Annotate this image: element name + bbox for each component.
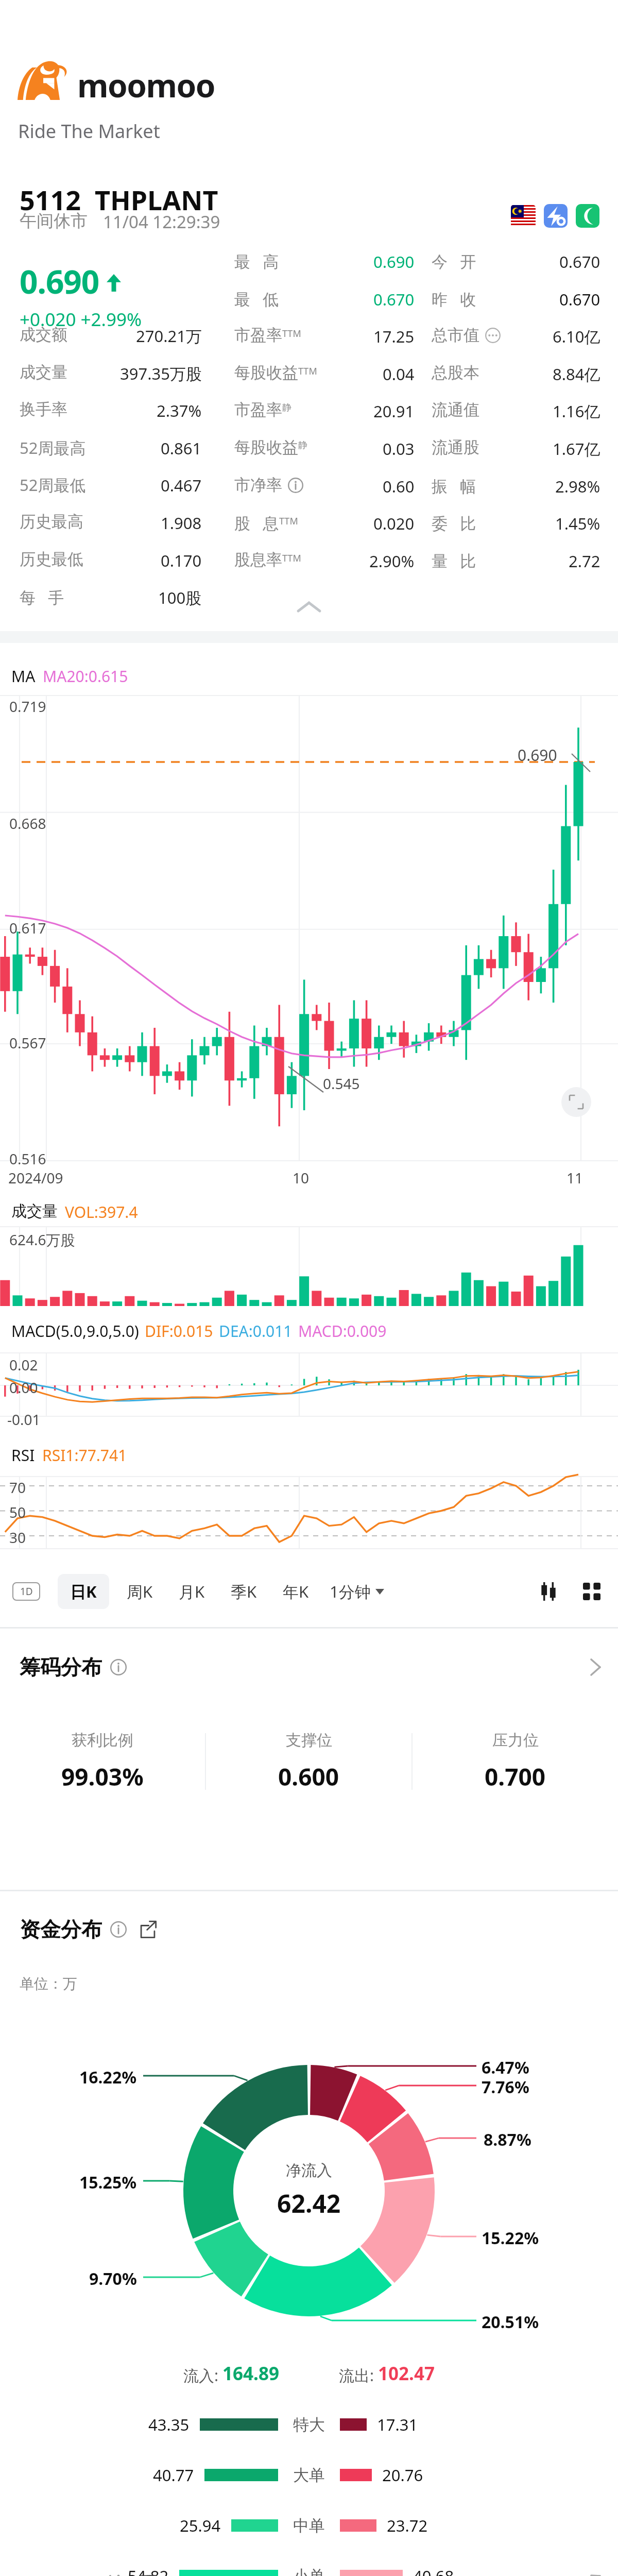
staticText: 20.76	[382, 2464, 423, 2486]
staticText: 52周最高	[20, 437, 86, 459]
staticText: 0.690	[20, 260, 99, 303]
staticText: 164.89	[222, 2361, 279, 2386]
staticText: 市盈率	[234, 325, 282, 345]
button[interactable]: 年K	[273, 1574, 318, 1609]
staticText: 2.90%	[369, 550, 415, 572]
staticText: 0.617	[9, 918, 46, 938]
staticText: 2024/09	[8, 1168, 63, 1188]
button[interactable]: 日K	[58, 1574, 109, 1609]
staticText: moomoo	[77, 63, 215, 107]
button[interactable]: 筹码分布	[0, 1629, 618, 1706]
staticText: 中单	[293, 2516, 325, 2536]
staticText: MACD(5.0,9.0,5.0)	[11, 1320, 139, 1342]
staticText: 历史最高	[20, 512, 83, 532]
staticText: 支撑位	[286, 1731, 332, 1750]
staticText: 最 低	[234, 288, 279, 310]
button[interactable]: Share	[138, 1920, 158, 1939]
staticText: 8.87%	[484, 2128, 531, 2151]
staticText: 0.567	[9, 1033, 46, 1053]
button[interactable]: Fullscreen chart	[561, 1087, 591, 1117]
staticText: 99.03%	[61, 1760, 144, 1793]
staticText: 1分钟	[330, 1581, 371, 1602]
staticText: 获利比例	[72, 1731, 133, 1750]
staticText: MA20:0.615	[43, 666, 128, 687]
staticText: 0.545	[323, 1074, 360, 1093]
staticText: 成交额	[20, 325, 67, 345]
staticText: 1D	[20, 1585, 33, 1598]
staticText: TTM	[282, 552, 301, 565]
staticText: 54.82	[128, 2565, 169, 2576]
staticText: 1.908	[161, 512, 202, 534]
button[interactable]: 周K	[117, 1574, 162, 1609]
staticText: 40.77	[153, 2464, 194, 2486]
staticText: TTM	[279, 515, 298, 528]
staticText: RSI	[11, 1445, 35, 1466]
staticText: 总股本	[432, 363, 479, 383]
staticText: 30	[9, 1528, 26, 1547]
staticText: 昨 收	[432, 288, 476, 310]
staticText: 最 高	[234, 250, 279, 272]
staticText: 股 息	[234, 512, 279, 534]
staticText: VOL:397.4	[65, 1201, 138, 1223]
staticText: 10	[293, 1168, 310, 1188]
staticText: 11/04 12:29:39	[103, 210, 220, 233]
staticText: 100股	[158, 587, 202, 608]
staticText: DIF:0.015	[145, 1320, 213, 1342]
staticText: TTM	[298, 365, 317, 378]
staticText: 11	[566, 1168, 583, 1188]
staticText: 2.98%	[555, 476, 600, 497]
staticText: 流出:	[339, 2365, 378, 2386]
staticText: 0.690	[518, 744, 557, 766]
staticText: 压力位	[492, 1731, 539, 1750]
staticText: 0.668	[9, 814, 46, 833]
staticText: 20.51%	[482, 2311, 539, 2333]
staticText: 0.670	[559, 251, 600, 273]
staticText: 624.6万股	[9, 1230, 75, 1249]
staticText: 0.03	[383, 438, 415, 460]
button[interactable]: More chart settings	[579, 1579, 605, 1604]
staticText: 流入:	[183, 2365, 222, 2386]
button[interactable]: 季K	[221, 1574, 266, 1609]
staticText: 62.42	[277, 2187, 341, 2220]
staticText: 15.22%	[482, 2227, 539, 2249]
staticText: 成交量	[20, 362, 67, 382]
staticText: 成交量	[11, 1201, 58, 1221]
staticText: 25.94	[180, 2515, 221, 2536]
staticText: 0.00	[9, 1378, 38, 1397]
staticText: RSI1:77.741	[42, 1445, 127, 1466]
staticText: 总市值	[432, 325, 479, 345]
staticText: 15.25%	[79, 2171, 137, 2194]
staticText: 股息率	[234, 550, 282, 570]
staticText: 市盈率	[234, 400, 282, 420]
staticText: +0.020 +2.99%	[20, 307, 142, 332]
staticText: 0.719	[9, 697, 46, 716]
staticText: 23.72	[387, 2515, 428, 2536]
staticText: -0.01	[7, 1410, 41, 1429]
staticText: 0.670	[559, 289, 600, 310]
staticText: DEA:0.011	[219, 1320, 293, 1342]
staticText: 振 幅	[432, 475, 476, 497]
staticText: 0.670	[373, 289, 415, 310]
staticText: 0.516	[9, 1149, 46, 1168]
staticText: 40.68	[413, 2565, 454, 2576]
button[interactable]: 1分钟	[325, 1574, 388, 1609]
staticText: 大单	[293, 2465, 325, 2485]
staticText: 流通值	[432, 400, 479, 420]
staticText: 16.22%	[79, 2066, 137, 2089]
staticText: 季K	[231, 1581, 257, 1602]
staticText: 午间休市	[20, 210, 88, 232]
staticText: 单位：万	[20, 1975, 77, 1993]
button[interactable]: 月K	[169, 1574, 214, 1609]
staticText: 50	[9, 1502, 26, 1522]
staticText: 换手率	[20, 399, 67, 419]
staticText: 流通股	[432, 437, 479, 457]
staticText: 7.76%	[482, 2076, 529, 2098]
staticText: 0.467	[161, 474, 202, 496]
staticText: 每股收益	[234, 437, 298, 457]
staticText: 0.020	[373, 513, 415, 534]
button[interactable]: 1D	[12, 1582, 40, 1601]
button[interactable]: Candlestick chart style	[536, 1579, 561, 1604]
staticText: 历史最低	[20, 549, 83, 569]
staticText: 量 比	[432, 550, 476, 571]
staticText: MACD:0.009	[298, 1320, 387, 1342]
